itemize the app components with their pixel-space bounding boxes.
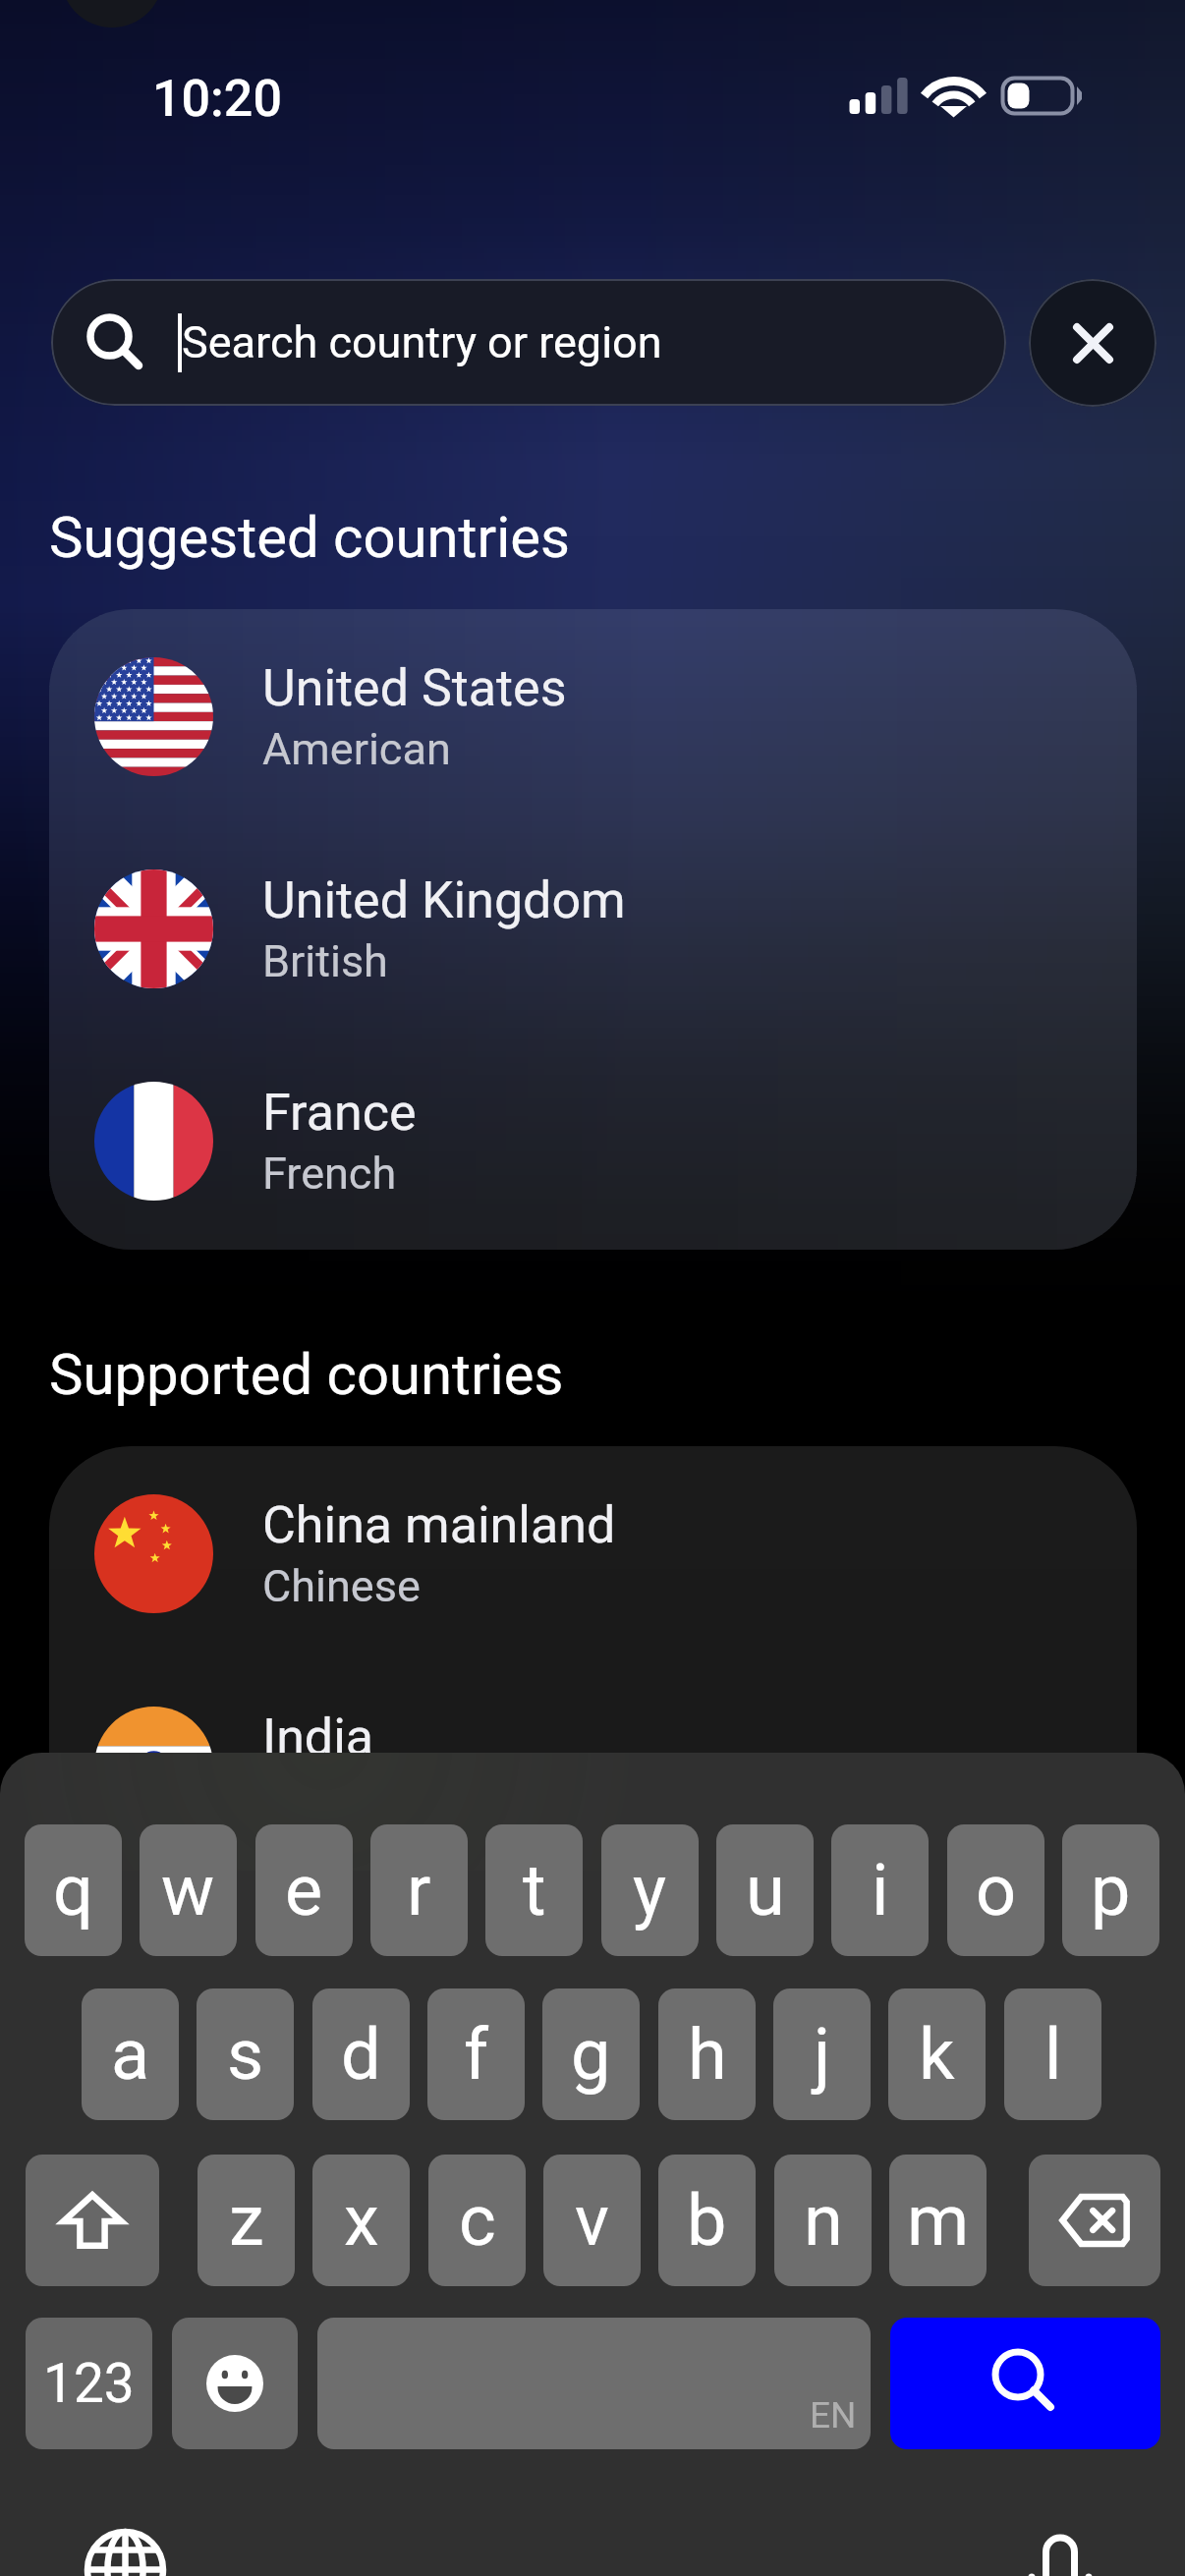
staticText: t	[523, 1849, 546, 1932]
button[interactable]: Shift	[26, 2155, 159, 2286]
staticText: India	[262, 1708, 374, 1767]
staticText: Suggested countries	[49, 504, 570, 571]
button[interactable]: x	[312, 2155, 410, 2286]
button[interactable]: d	[312, 1988, 410, 2120]
button[interactable]: Close search	[1029, 279, 1157, 407]
button[interactable]: u	[716, 1824, 814, 1956]
staticText: g	[571, 2013, 611, 2096]
button[interactable]: Search	[890, 2318, 1160, 2449]
staticText: i	[872, 1849, 889, 1932]
button[interactable]: e	[255, 1824, 353, 1956]
staticText: h	[688, 2013, 727, 2096]
button[interactable]: Space	[317, 2318, 871, 2449]
staticText: France	[262, 1083, 417, 1143]
button[interactable]: r	[370, 1824, 468, 1956]
button[interactable]: Switch keyboard language	[81, 2525, 170, 2576]
staticText: r	[407, 1849, 431, 1932]
button[interactable]: n	[774, 2155, 872, 2286]
button[interactable]: p	[1062, 1824, 1159, 1956]
button[interactable]: Backspace	[1029, 2155, 1160, 2286]
button[interactable]: v	[543, 2155, 641, 2286]
staticText: Supported countries	[49, 1341, 564, 1408]
button[interactable]: k	[888, 1988, 986, 2120]
staticText: EN	[810, 2394, 857, 2436]
staticText: 10:20	[152, 69, 282, 129]
staticText: e	[285, 1849, 323, 1932]
staticText: w	[161, 1849, 215, 1932]
staticText: m	[907, 2179, 970, 2262]
button[interactable]: l	[1004, 1988, 1101, 2120]
staticText: American	[262, 723, 451, 775]
staticText: Chinese	[262, 1560, 421, 1612]
staticText: 123	[43, 2352, 135, 2415]
button[interactable]: China mainland	[49, 1447, 1137, 1659]
button[interactable]: i	[831, 1824, 929, 1956]
staticText: o	[976, 1849, 1017, 1932]
staticText: v	[575, 2179, 609, 2262]
button[interactable]: m	[889, 2155, 987, 2286]
button[interactable]: Emoji	[172, 2318, 298, 2449]
staticText: d	[341, 2013, 381, 2096]
button[interactable]: c	[428, 2155, 526, 2286]
button[interactable]: Voice input	[1016, 2521, 1104, 2576]
staticText: f	[464, 2013, 489, 2096]
button[interactable]: United States	[49, 610, 1137, 822]
button[interactable]: f	[427, 1988, 525, 2120]
staticText: k	[919, 2013, 955, 2096]
staticText: s	[227, 2013, 264, 2096]
button[interactable]: g	[542, 1988, 640, 2120]
staticText: q	[53, 1849, 93, 1932]
button[interactable]: y	[601, 1824, 699, 1956]
staticText: c	[459, 2179, 496, 2262]
staticText: l	[1044, 2013, 1062, 2096]
button[interactable]: q	[25, 1824, 122, 1956]
staticText: United States	[262, 658, 567, 718]
button[interactable]: j	[773, 1988, 871, 2120]
staticText: n	[804, 2179, 843, 2262]
button[interactable]: India	[49, 1659, 1137, 1872]
button[interactable]: France	[49, 1035, 1137, 1247]
staticText: j	[814, 2013, 831, 2096]
staticText: x	[344, 2179, 379, 2262]
button[interactable]: 123	[26, 2318, 152, 2449]
button[interactable]: s	[197, 1988, 294, 2120]
staticText: British	[262, 935, 388, 987]
staticText: y	[633, 1849, 667, 1932]
button[interactable]: o	[947, 1824, 1044, 1956]
button[interactable]: h	[658, 1988, 756, 2120]
staticText: Search country or region	[182, 316, 662, 368]
button[interactable]: Search country or region	[51, 279, 1006, 406]
button[interactable]: t	[485, 1824, 583, 1956]
staticText: China mainland	[262, 1495, 616, 1555]
staticText: United Kingdom	[262, 870, 626, 930]
button[interactable]: a	[82, 1988, 179, 2120]
button[interactable]: b	[658, 2155, 756, 2286]
button[interactable]: z	[197, 2155, 295, 2286]
button[interactable]: United Kingdom	[49, 822, 1137, 1035]
staticText: u	[746, 1849, 785, 1932]
staticText: z	[229, 2179, 264, 2262]
staticText: p	[1091, 1849, 1131, 1932]
staticText: French	[262, 1148, 397, 1200]
button[interactable]: w	[140, 1824, 237, 1956]
staticText: a	[111, 2013, 150, 2096]
staticText: b	[687, 2179, 727, 2262]
